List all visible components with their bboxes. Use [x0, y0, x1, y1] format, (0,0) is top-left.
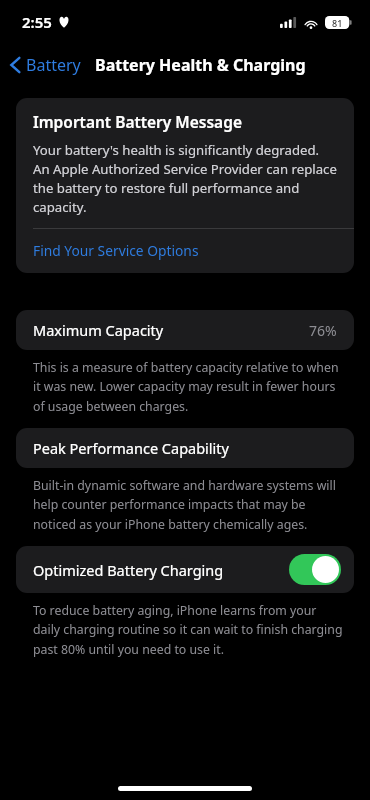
staticText: Important Battery Message — [33, 111, 242, 132]
staticText: Optimized Battery Charging — [33, 560, 224, 580]
staticText: To reduce battery aging, iPhone learns f… — [33, 602, 344, 658]
staticText: 76% — [309, 321, 337, 340]
staticText: 2:55 — [22, 12, 52, 32]
button[interactable]: Peak Performance Capability — [16, 428, 354, 468]
button[interactable]: Optimized Battery Charging toggle — [289, 554, 341, 585]
button[interactable]: Maximum Capacity — [16, 310, 354, 350]
other: Back — [10, 56, 21, 74]
staticText: Battery — [26, 54, 81, 76]
staticText: Built-in dynamic software and hardware s… — [33, 477, 344, 533]
staticText: 81 — [332, 17, 343, 29]
staticText: Battery Health & Charging — [95, 54, 306, 76]
staticText: Peak Performance Capability — [33, 438, 229, 458]
staticText: Find Your Service Options — [33, 241, 199, 260]
staticText: This is a measure of battery capacity re… — [33, 359, 344, 415]
staticText: Maximum Capacity — [33, 320, 164, 340]
button[interactable]: Back — [0, 50, 87, 80]
button[interactable]: Optimized Battery Charging — [16, 546, 354, 593]
staticText: Your battery's health is significantly d… — [33, 141, 337, 216]
button[interactable]: Find Your Service Options — [16, 229, 354, 273]
